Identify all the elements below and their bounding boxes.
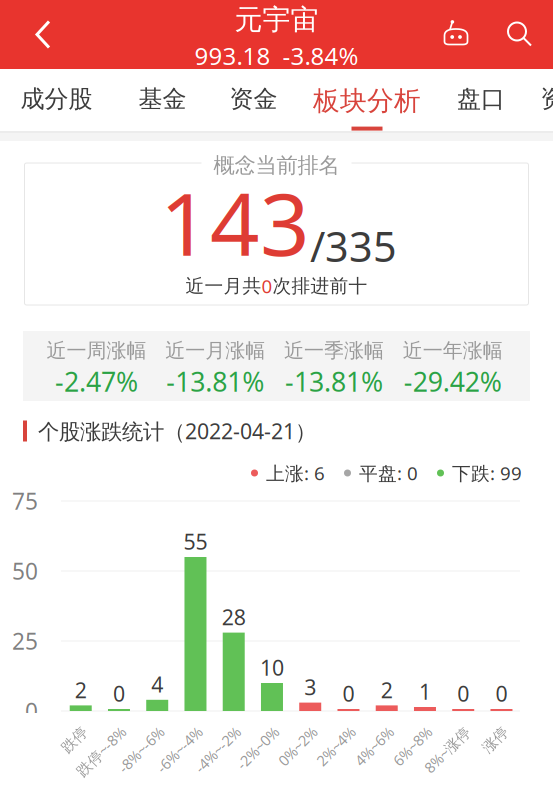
button[interactable]: Search bbox=[487, 0, 553, 69]
staticText: 2 bbox=[381, 675, 393, 704]
staticText: 4%~6% bbox=[361, 762, 409, 782]
staticText: -2.47% bbox=[55, 363, 138, 399]
staticText: 次排进前十 bbox=[272, 274, 367, 298]
staticText: 近一月共 bbox=[185, 274, 261, 298]
staticText: 近一月涨幅 bbox=[165, 338, 265, 363]
staticText: 盘口 bbox=[457, 84, 505, 114]
staticText: 概念当前排名 bbox=[213, 152, 339, 179]
staticText: 0%~2% bbox=[284, 762, 332, 782]
staticText: -13.81% bbox=[285, 363, 383, 399]
button[interactable]: 资金 bbox=[212, 69, 295, 133]
staticText: 8%~涨停 bbox=[427, 762, 485, 782]
staticText: 55 bbox=[183, 527, 207, 556]
staticText: 上涨: 6 bbox=[266, 460, 325, 486]
button[interactable]: 盘口 bbox=[439, 69, 523, 133]
staticText: -13.81% bbox=[166, 363, 264, 399]
staticText: 1 bbox=[419, 677, 431, 706]
staticText: 25 bbox=[12, 626, 38, 656]
staticText: 近一周涨幅 bbox=[46, 338, 146, 363]
button[interactable]: 基金 bbox=[113, 69, 212, 133]
staticText: 10 bbox=[260, 653, 284, 682]
staticText: /335 bbox=[310, 218, 397, 274]
staticText: 0 bbox=[342, 679, 354, 708]
staticText: 基金 bbox=[138, 84, 186, 114]
staticText: 0 bbox=[495, 679, 507, 708]
staticText: 0 bbox=[25, 696, 38, 726]
staticText: 2%~4% bbox=[323, 762, 371, 782]
staticText: 近一季涨幅 bbox=[284, 338, 384, 363]
staticText: 跌停~-8% bbox=[78, 762, 141, 782]
staticText: 993.18 -3.84% bbox=[194, 39, 358, 72]
staticText: 0 bbox=[261, 273, 272, 299]
staticText: 143 bbox=[160, 163, 310, 281]
staticText: 4 bbox=[151, 670, 163, 699]
staticText: -6%~-4% bbox=[160, 762, 218, 782]
staticText: -8%~-6% bbox=[121, 762, 179, 782]
staticText: 板块分析 bbox=[313, 84, 421, 118]
staticText: 平盘: 0 bbox=[359, 460, 418, 486]
button[interactable]: Back bbox=[0, 0, 86, 69]
staticText: 6%~8% bbox=[399, 762, 447, 782]
staticText: 近一年涨幅 bbox=[403, 338, 503, 363]
button[interactable]: 资讯 bbox=[523, 69, 553, 133]
staticText: 0 bbox=[457, 679, 469, 708]
staticText: 28 bbox=[222, 602, 246, 632]
staticText: 50 bbox=[12, 556, 38, 586]
staticText: 成分股 bbox=[20, 84, 92, 114]
staticText: 跌停 bbox=[73, 762, 103, 781]
staticText: 资讯 bbox=[540, 84, 553, 114]
button[interactable]: Assistant bbox=[425, 0, 487, 69]
button[interactable]: 成分股 bbox=[0, 69, 113, 133]
staticText: 2 bbox=[75, 675, 87, 704]
staticText: -4%~-2% bbox=[198, 762, 256, 782]
staticText: 资金 bbox=[229, 84, 277, 114]
staticText: 0 bbox=[113, 679, 125, 708]
button[interactable]: 板块分析 bbox=[295, 69, 439, 133]
staticText: -2%~0% bbox=[241, 762, 294, 782]
staticText: 下跌: 99 bbox=[452, 460, 522, 486]
staticText: 个股涨跌统计（2022-04-21） bbox=[38, 416, 316, 446]
staticText: 3 bbox=[304, 672, 316, 702]
staticText: -29.42% bbox=[404, 363, 502, 399]
staticText: 75 bbox=[12, 486, 38, 516]
staticText: 元宇宙 bbox=[234, 2, 318, 37]
